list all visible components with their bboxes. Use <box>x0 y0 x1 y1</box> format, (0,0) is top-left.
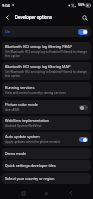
button[interactable]: Home <box>40 187 52 199</box>
button[interactable]: Quick settings developer tiles <box>2 160 91 171</box>
button[interactable]: Back <box>65 187 77 199</box>
staticText: Picture color mode <box>5 102 38 107</box>
staticText: Demo mode <box>5 151 27 156</box>
staticText: Select your country or region <box>5 176 55 181</box>
button[interactable]: Navigate up <box>2 12 13 23</box>
button[interactable]: On <box>2 26 91 37</box>
button[interactable]: Recent apps <box>17 187 29 199</box>
staticText: Bluetooth HCI snoop log filtering PBAP <box>5 44 72 49</box>
staticText: Apply updates when the phone restarts <box>5 140 61 144</box>
staticText: 9:04 <box>2 3 10 8</box>
button[interactable]: Running services <box>2 82 91 97</box>
button[interactable]: WebView implementation <box>2 116 91 130</box>
button[interactable]: Switch on <box>78 29 88 35</box>
button[interactable]: Switch on <box>79 137 88 142</box>
staticText: Quick settings developer tiles <box>5 163 56 168</box>
button[interactable]: Picture color mode <box>2 100 91 114</box>
staticText: Auto update system <box>5 134 40 139</box>
staticText: Developer options <box>15 15 53 20</box>
staticText: Use sRGB <box>5 108 19 112</box>
button[interactable]: Demo mode <box>2 148 91 159</box>
button[interactable]: Bluetooth HCI snoop log filtering MAP <box>2 62 91 80</box>
button[interactable]: Switch off <box>79 105 88 110</box>
staticText: Bluetooth HCI snoop log filtering MAP <box>5 64 71 69</box>
button[interactable]: Bluetooth HCI snoop log filtering PBAP <box>2 42 91 60</box>
button[interactable]: Search <box>79 12 90 23</box>
button[interactable]: Auto update system <box>2 132 91 146</box>
staticText: WebView implementation <box>5 118 50 123</box>
staticText: 50% <box>78 3 85 7</box>
staticText: Android System WebView <box>5 124 42 128</box>
button[interactable]: Select your country or region <box>2 173 91 184</box>
staticText: Running services <box>5 85 35 90</box>
staticText: Set Bluetooth HCI snoop log to Enabled F… <box>5 50 88 58</box>
staticText: View and control currently running servi… <box>5 91 66 95</box>
staticText: On <box>5 29 11 34</box>
staticText: Set Bluetooth HCI snoop log to Enabled F… <box>5 70 88 78</box>
